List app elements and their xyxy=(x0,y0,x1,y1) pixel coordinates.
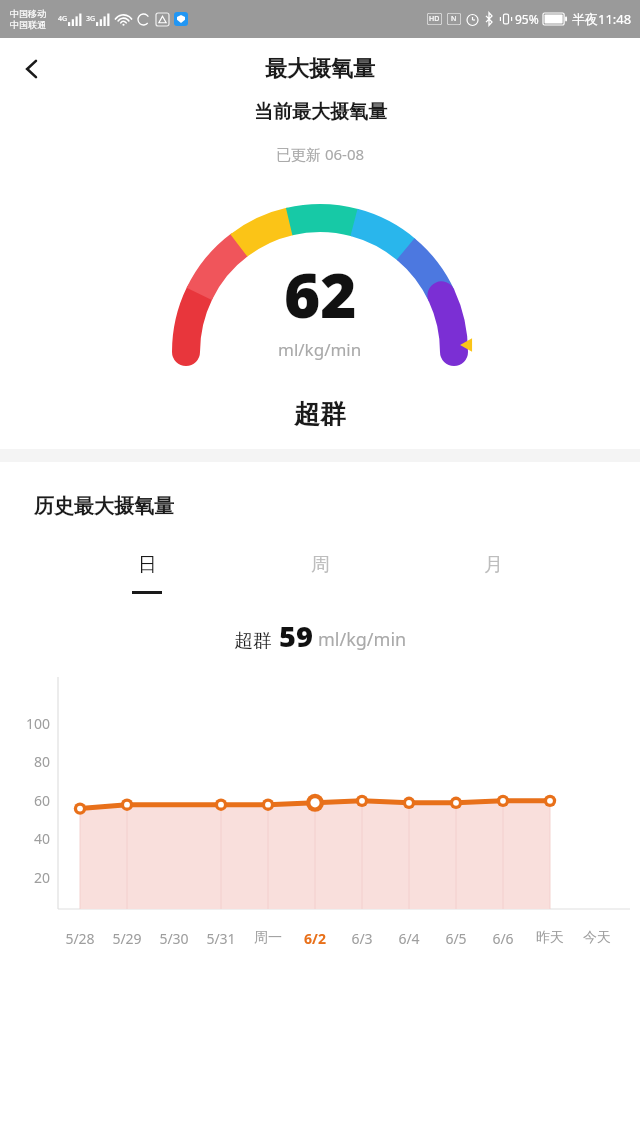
staticText: 历史最大摄氧量 xyxy=(34,494,174,519)
staticText: 6/2 xyxy=(304,929,326,948)
staticText: 4G xyxy=(58,14,68,24)
staticText: 半夜11:48 xyxy=(572,10,632,28)
staticText: N xyxy=(451,14,457,24)
staticText: 周 xyxy=(311,553,330,577)
button[interactable]: 返回 xyxy=(8,45,56,93)
button[interactable]: 周 xyxy=(234,549,407,598)
staticText: 昨天 xyxy=(536,929,564,947)
staticText: ml/kg/min xyxy=(278,338,362,361)
staticText: 100 xyxy=(25,714,50,733)
staticText: 6/4 xyxy=(398,929,420,948)
staticText: 6/3 xyxy=(351,929,373,948)
staticText: 5/30 xyxy=(159,929,189,948)
staticText: 今天 xyxy=(583,929,611,947)
staticText: 3G xyxy=(86,14,96,24)
staticText: 60 xyxy=(33,791,50,810)
staticText: 最大摄氧量 xyxy=(265,55,375,83)
staticText: 80 xyxy=(33,752,50,771)
staticText: 5/31 xyxy=(206,929,236,948)
staticText: 20 xyxy=(33,868,50,887)
staticText: 62 xyxy=(284,252,357,336)
staticText: 5/28 xyxy=(65,929,95,948)
staticText: 40 xyxy=(33,829,50,848)
staticText: 59 xyxy=(279,616,313,655)
staticText: 6/5 xyxy=(445,929,467,948)
staticText: ml/kg/min xyxy=(318,627,407,652)
staticText: 中国移动 xyxy=(10,8,46,19)
staticText: 6/6 xyxy=(492,929,514,948)
staticText: 日 xyxy=(138,553,157,577)
staticText: 中国联通 xyxy=(10,19,46,30)
staticText: HD xyxy=(429,14,440,24)
staticText: 当前最大摄氧量 xyxy=(254,100,387,124)
button[interactable]: 日 xyxy=(60,549,234,598)
staticText: 周一 xyxy=(254,929,282,947)
staticText: 95% xyxy=(515,11,539,27)
button[interactable]: 月 xyxy=(407,549,580,598)
staticText: 超群 xyxy=(234,629,272,653)
staticText: 月 xyxy=(484,553,503,577)
staticText: 超群 xyxy=(294,398,346,431)
staticText: 已更新 06-08 xyxy=(276,144,365,164)
staticText: 5/29 xyxy=(112,929,142,948)
